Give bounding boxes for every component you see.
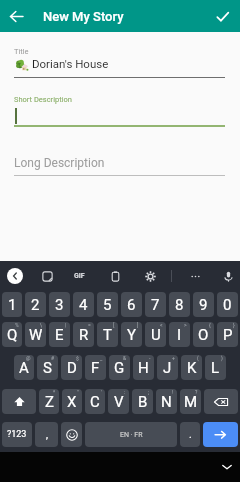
staticText: _: [100, 355, 103, 361]
button[interactable]: settings: [141, 267, 159, 285]
button[interactable]: I: [169, 322, 190, 347]
button[interactable]: .: [180, 422, 200, 447]
button[interactable]: S: [37, 355, 58, 380]
staticText: G: [114, 359, 125, 377]
button[interactable]: N: [156, 389, 177, 414]
staticText: {: [209, 322, 211, 328]
button[interactable]: sticker: [38, 267, 56, 285]
button[interactable]: 8: [169, 292, 190, 317]
button[interactable]: A: [14, 355, 34, 380]
button[interactable]: 6: [121, 292, 142, 317]
staticText: Q: [7, 326, 18, 344]
staticText: ;: [148, 389, 150, 395]
staticText: ?123: [7, 429, 27, 440]
staticText: GIF: [74, 272, 85, 280]
button[interactable]: P: [217, 322, 238, 347]
button[interactable]: G: [109, 355, 130, 380]
button[interactable]: Y: [121, 322, 142, 347]
button[interactable]: Shift: [2, 389, 36, 414]
staticText: -: [149, 355, 151, 361]
staticText: N: [161, 393, 172, 411]
staticText: W: [29, 326, 43, 344]
staticText: R: [79, 326, 89, 344]
button[interactable]: V: [108, 389, 129, 414]
staticText: =: [88, 322, 91, 328]
button[interactable]: Emoji: [61, 422, 82, 447]
button[interactable]: Q: [2, 322, 22, 347]
staticText: J: [163, 359, 172, 377]
staticText: Dorian's House: [32, 57, 109, 70]
button[interactable]: EN · FR: [85, 422, 177, 447]
button[interactable]: T: [97, 322, 118, 347]
staticText: I: [177, 326, 182, 344]
button[interactable]: 5: [97, 292, 118, 317]
button[interactable]: H: [133, 355, 154, 380]
button[interactable]: Save: [210, 4, 234, 28]
button[interactable]: [203, 422, 238, 447]
staticText: &: [123, 355, 127, 361]
button[interactable]: X: [62, 389, 82, 414]
staticText: [: [113, 322, 115, 328]
button[interactable]: F: [85, 355, 106, 380]
staticText: 1: [8, 296, 17, 314]
button[interactable]: E: [49, 322, 70, 347]
button[interactable]: 9: [193, 292, 214, 317]
staticText: ,: [46, 429, 48, 441]
staticText: Title: [14, 47, 29, 56]
staticText: B: [138, 393, 148, 411]
button[interactable]: D: [61, 355, 82, 380]
staticText: :: [124, 389, 126, 395]
button[interactable]: 2: [25, 292, 46, 317]
button[interactable]: Z: [39, 389, 59, 414]
staticText: .: [189, 429, 192, 441]
staticText: }: [233, 322, 235, 328]
staticText: S: [43, 359, 52, 377]
staticText: A: [19, 359, 29, 377]
staticText: Long Description: [14, 156, 105, 170]
staticText: EN · FR: [120, 431, 143, 439]
staticText: <: [160, 322, 163, 328]
button[interactable]: Back: [4, 4, 28, 28]
staticText: D: [67, 359, 77, 377]
button[interactable]: Backspace: [204, 389, 238, 414]
staticText: ): [221, 355, 223, 361]
staticText: (: [197, 355, 199, 361]
button[interactable]: GIF: [70, 267, 88, 285]
button[interactable]: ,: [35, 422, 58, 447]
button[interactable]: L: [205, 355, 226, 380]
button[interactable]: R: [73, 322, 94, 347]
button[interactable]: mic: [219, 267, 237, 285]
button[interactable]: K: [181, 355, 202, 380]
button[interactable]: 1: [2, 292, 22, 317]
button[interactable]: Hide keyboard: [216, 456, 238, 478]
button[interactable]: O: [193, 322, 214, 347]
staticText: U: [151, 326, 161, 344]
button[interactable]: M: [180, 389, 201, 414]
staticText: !: [172, 389, 174, 395]
staticText: Z: [45, 393, 54, 411]
button[interactable]: W: [25, 322, 46, 347]
staticText: 2: [31, 296, 40, 314]
button[interactable]: clipboard: [106, 267, 124, 285]
button[interactable]: J: [157, 355, 178, 380]
staticText: 7: [151, 296, 160, 314]
button[interactable]: 0: [217, 292, 238, 317]
button[interactable]: ?123: [2, 422, 32, 447]
button[interactable]: 3: [49, 292, 70, 317]
staticText: %: [15, 322, 19, 328]
staticText: Y: [127, 326, 137, 344]
staticText: F: [91, 359, 100, 377]
button[interactable]: C: [85, 389, 105, 414]
button[interactable]: more: [186, 267, 204, 285]
staticText: #: [51, 355, 55, 361]
staticText: L: [211, 359, 220, 377]
staticText: \: [40, 322, 43, 328]
button[interactable]: 4: [73, 292, 94, 317]
staticText: V: [114, 393, 124, 411]
staticText: H: [138, 359, 149, 377]
staticText: T: [103, 326, 112, 344]
button[interactable]: 7: [145, 292, 166, 317]
button[interactable]: U: [145, 322, 166, 347]
button[interactable]: B: [132, 389, 153, 414]
button[interactable]: Close keyboard toolbar: [7, 268, 23, 284]
